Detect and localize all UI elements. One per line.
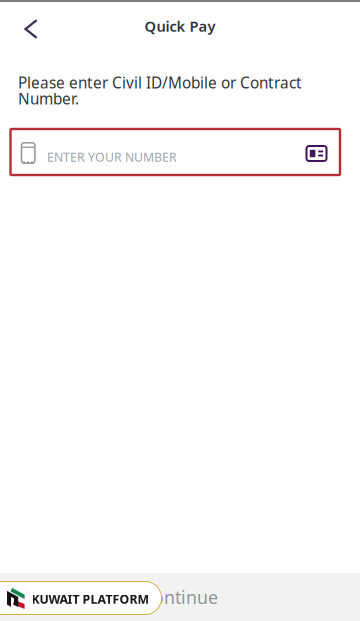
staticText: KUWAIT PLATFORM xyxy=(31,591,149,607)
staticText: Quick Pay xyxy=(144,16,215,36)
button[interactable]: Back xyxy=(10,9,52,49)
staticText: Please enter Civil ID/Mobile or Contract… xyxy=(18,72,302,109)
staticText: ENTER YOUR NUMBER xyxy=(47,149,177,165)
button[interactable]: ENTER YOUR NUMBER xyxy=(10,129,340,175)
staticText: Continue xyxy=(142,585,218,609)
button[interactable]: Continue xyxy=(0,573,360,621)
